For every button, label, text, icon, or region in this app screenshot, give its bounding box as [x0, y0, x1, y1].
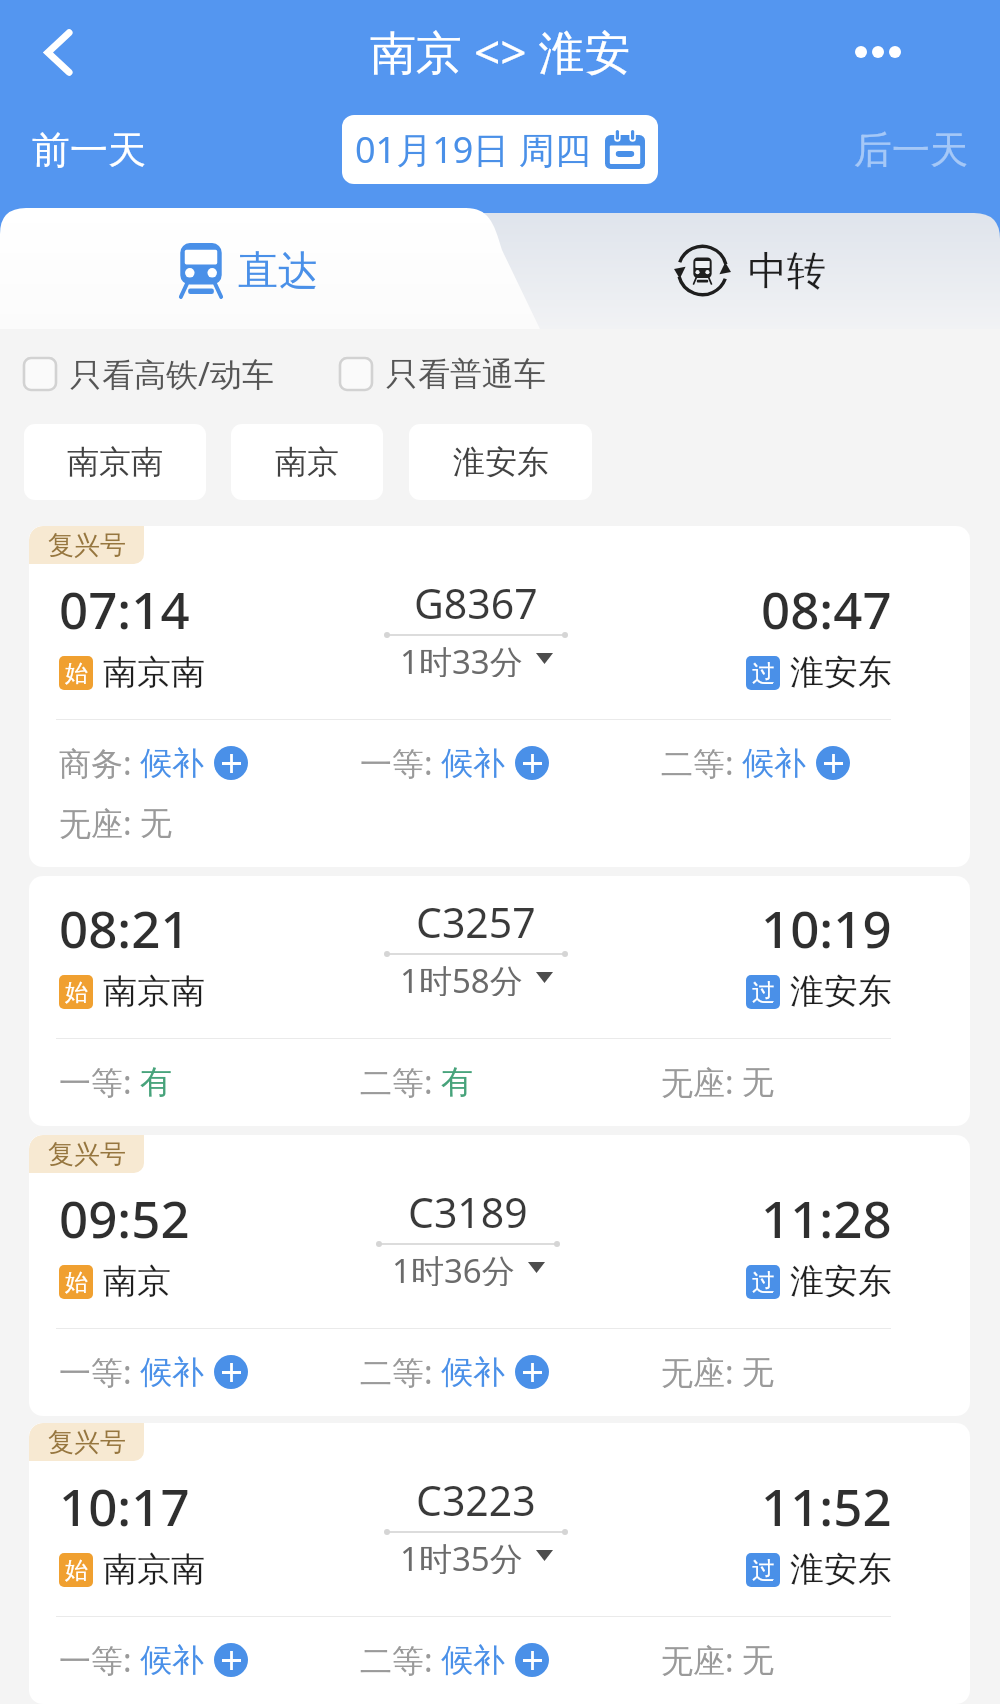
staticText: 无座:: [59, 801, 140, 845]
staticText: 1时36分: [392, 1248, 515, 1286]
staticText: 过: [752, 978, 775, 1007]
staticText: 中转: [748, 246, 826, 295]
button[interactable]: 前一天: [18, 116, 160, 184]
staticText: 始: [65, 1556, 88, 1585]
button[interactable]: 中转: [500, 211, 1000, 329]
button[interactable]: 复兴号: [29, 1423, 970, 1704]
button[interactable]: Add to waitlist: [214, 1643, 248, 1677]
staticText: 10:19: [761, 893, 892, 962]
button[interactable]: Add to waitlist: [214, 1355, 248, 1389]
staticText: 无座:: [661, 1638, 742, 1682]
staticText: 过: [752, 659, 775, 688]
staticText: 淮安东: [790, 651, 892, 694]
button[interactable]: Back: [23, 17, 93, 87]
staticText: 二等:: [661, 741, 742, 785]
staticText: 始: [65, 659, 88, 688]
staticText: 南京南: [103, 651, 205, 694]
button[interactable]: 01月19日 周四: [342, 115, 658, 184]
staticText: 二等:: [360, 1350, 441, 1394]
staticText: 复兴号: [48, 1138, 126, 1171]
staticText: 1时33分: [400, 639, 523, 677]
staticText: 无: [742, 1062, 774, 1102]
staticText: 二等:: [360, 1638, 441, 1682]
button[interactable]: 复兴号: [29, 526, 970, 867]
button[interactable]: 只看普通车: [340, 346, 546, 402]
button[interactable]: Add to waitlist: [515, 1355, 549, 1389]
button[interactable]: 复兴号: [29, 1135, 970, 1416]
button[interactable]: 南京南: [24, 424, 206, 500]
staticText: 无座:: [661, 1060, 742, 1104]
staticText: 1时58分: [400, 958, 523, 996]
staticText: 淮安东: [790, 1548, 892, 1591]
staticText: 07:14: [59, 574, 190, 643]
staticText: 无: [742, 1640, 774, 1680]
staticText: 无座:: [661, 1350, 742, 1394]
staticText: 淮安东: [453, 442, 549, 482]
staticText: 过: [752, 1268, 775, 1297]
staticText: 前一天: [32, 126, 146, 174]
staticText: 复兴号: [48, 529, 126, 562]
staticText: 二等:: [360, 1060, 441, 1104]
staticText: 08:21: [59, 893, 190, 962]
staticText: 无: [742, 1352, 774, 1392]
button[interactable]: 淮安东: [409, 424, 592, 500]
staticText: 一等:: [360, 741, 441, 785]
staticText: 一等:: [59, 1350, 140, 1394]
staticText: 南京: [275, 442, 339, 482]
staticText: 商务:: [59, 741, 140, 785]
staticText: 南京 <> 淮安: [370, 20, 631, 83]
staticText: 11:52: [761, 1471, 892, 1540]
staticText: 直达: [238, 245, 318, 295]
staticText: 复兴号: [48, 1426, 126, 1459]
staticText: 南京: [103, 1260, 171, 1303]
staticText: 候补: [140, 1640, 204, 1680]
staticText: 一等:: [59, 1638, 140, 1682]
staticText: 一等:: [59, 1060, 140, 1104]
staticText: G8367: [414, 575, 538, 631]
button[interactable]: Add to waitlist: [515, 1643, 549, 1677]
button[interactable]: 只看高铁/动车: [24, 344, 274, 404]
staticText: 南京南: [103, 1548, 205, 1591]
staticText: 候补: [742, 743, 806, 783]
staticText: 候补: [441, 1352, 505, 1392]
staticText: 10:17: [59, 1471, 190, 1540]
staticText: 南京南: [67, 442, 163, 482]
staticText: 只看普通车: [386, 354, 546, 394]
staticText: 南京南: [103, 970, 205, 1013]
staticText: C3189: [408, 1184, 528, 1240]
staticText: 候补: [140, 1352, 204, 1392]
staticText: 淮安东: [790, 970, 892, 1013]
staticText: 过: [752, 1556, 775, 1585]
staticText: 候补: [441, 1640, 505, 1680]
button[interactable]: Add to waitlist: [214, 746, 248, 780]
staticText: 后一天: [854, 126, 968, 174]
staticText: 有: [441, 1062, 473, 1102]
button[interactable]: More options: [843, 17, 913, 87]
staticText: 候补: [140, 743, 204, 783]
button[interactable]: 南京: [231, 424, 383, 500]
staticText: C3223: [416, 1472, 536, 1528]
button[interactable]: 后一天: [840, 116, 982, 184]
staticText: 候补: [441, 743, 505, 783]
button[interactable]: Add to waitlist: [816, 746, 850, 780]
button[interactable]: 08:21: [29, 876, 970, 1126]
staticText: 只看高铁/动车: [70, 352, 274, 396]
staticText: 始: [65, 1268, 88, 1297]
staticText: 无: [140, 803, 172, 843]
staticText: 1时35分: [400, 1536, 523, 1574]
button[interactable]: Add to waitlist: [515, 746, 549, 780]
staticText: 有: [140, 1062, 172, 1102]
staticText: 始: [65, 978, 88, 1007]
staticText: C3257: [416, 894, 536, 950]
button[interactable]: 直达: [0, 211, 490, 329]
staticText: 11:28: [761, 1183, 892, 1252]
staticText: 01月19日 周四: [355, 125, 591, 174]
staticText: 08:47: [761, 574, 892, 643]
staticText: 09:52: [59, 1183, 190, 1252]
staticText: 淮安东: [790, 1260, 892, 1303]
